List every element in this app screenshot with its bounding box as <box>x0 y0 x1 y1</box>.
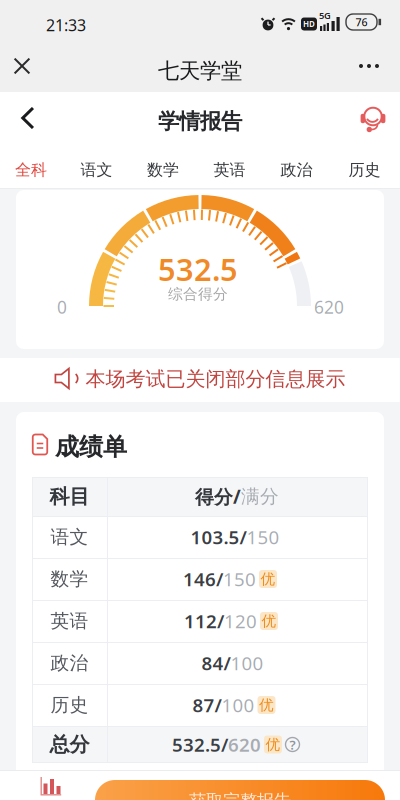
staticText: 全科 <box>15 160 47 180</box>
staticText: 620 <box>228 732 261 757</box>
staticText: 76 <box>355 15 367 29</box>
staticText: 学情报告 <box>158 108 242 135</box>
staticText: 146/ <box>183 567 223 591</box>
staticText: 100 <box>230 651 263 675</box>
staticText: 优 <box>259 696 274 714</box>
button[interactable]: ? <box>285 737 300 752</box>
staticText: 总分 <box>49 732 89 757</box>
staticText: 英语 <box>213 160 245 180</box>
staticText: 150 <box>246 525 279 549</box>
staticText: 语文 <box>80 160 112 180</box>
staticText: 优 <box>261 612 276 630</box>
staticText: 84/ <box>201 651 230 675</box>
staticText: 620 <box>314 295 344 318</box>
staticText: 科目 <box>49 484 89 509</box>
staticText: 获取完整报告 <box>189 790 291 800</box>
staticText: 0 <box>57 295 67 318</box>
staticText: 满分 <box>241 485 279 508</box>
staticText: 政治 <box>50 651 88 674</box>
button[interactable]: 语文 <box>70 150 122 190</box>
staticText: HD <box>303 19 315 29</box>
staticText: 532.5 <box>158 249 238 289</box>
button[interactable]: 数学 <box>137 150 189 190</box>
button[interactable] <box>353 98 393 138</box>
staticText: 语文 <box>50 525 88 548</box>
button[interactable]: 英语 <box>203 150 255 190</box>
staticText: 得分/ <box>195 484 241 509</box>
staticText: 103.5/ <box>190 525 246 549</box>
staticText: 数学 <box>147 160 179 180</box>
staticText: 5G <box>319 9 331 22</box>
staticText: 532.5/ <box>172 732 228 757</box>
staticText: 成绩单 <box>55 432 127 462</box>
staticText: 政治 <box>280 160 312 180</box>
button[interactable] <box>28 771 74 800</box>
button[interactable]: 政治 <box>270 150 322 190</box>
staticText: 优 <box>265 735 280 753</box>
staticText: 21:33 <box>46 14 86 36</box>
staticText: 数学 <box>50 567 88 590</box>
staticText: 87/ <box>192 693 221 717</box>
staticText: 历史 <box>348 160 380 180</box>
button[interactable]: 获取完整报告 <box>95 780 385 800</box>
staticText: 优 <box>260 570 275 588</box>
staticText: 综合得分 <box>168 285 228 303</box>
staticText: 本场考试已关闭部分信息展示 <box>85 367 345 391</box>
staticText: 英语 <box>50 609 88 632</box>
button[interactable]: 历史 <box>338 150 390 190</box>
staticText: ? <box>289 736 295 753</box>
staticText: 120 <box>224 609 257 633</box>
staticText: 历史 <box>50 693 88 716</box>
button[interactable] <box>347 46 391 86</box>
staticText: 112/ <box>184 609 224 633</box>
button[interactable]: 全科 <box>5 150 57 190</box>
button[interactable] <box>2 46 42 86</box>
staticText: 150 <box>223 567 256 591</box>
button[interactable] <box>6 96 50 140</box>
staticText: 100 <box>221 693 254 717</box>
staticText: 七天学堂 <box>158 58 242 84</box>
